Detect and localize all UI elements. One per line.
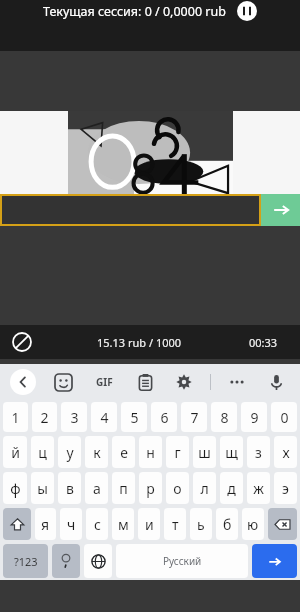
- staticText: р: [146, 479, 155, 498]
- staticText: е: [120, 443, 128, 462]
- button[interactable]: [0, 194, 261, 226]
- staticText: а: [93, 479, 101, 498]
- staticText: у: [66, 443, 74, 462]
- button[interactable]: Submit captcha: [261, 194, 300, 226]
- button[interactable]: т: [164, 508, 186, 540]
- staticText: ?123: [14, 554, 38, 569]
- staticText: 9: [250, 408, 259, 427]
- staticText: б: [223, 515, 232, 534]
- button[interactable]: е: [112, 436, 135, 468]
- button[interactable]: з: [247, 436, 270, 468]
- staticText: ж: [253, 479, 264, 498]
- button[interactable]: Voice input: [265, 371, 287, 393]
- staticText: 0: [280, 408, 289, 427]
- button[interactable]: 7: [181, 402, 207, 432]
- button[interactable]: к: [85, 436, 108, 468]
- button[interactable]: Shift: [3, 508, 31, 540]
- button[interactable]: щ: [220, 436, 243, 468]
- button[interactable]: р: [139, 472, 162, 504]
- staticText: Текущая сессия: 0 / 0,0000 rub: [43, 3, 226, 20]
- button[interactable]: Change language: [84, 544, 112, 578]
- button[interactable]: д: [220, 472, 243, 504]
- button[interactable]: Stop: [11, 331, 33, 353]
- button[interactable]: ?123: [3, 544, 48, 578]
- button[interactable]: Clipboard: [134, 371, 156, 393]
- button[interactable]: м: [112, 508, 134, 540]
- staticText: г: [174, 443, 181, 462]
- button[interactable]: Pause session: [236, 0, 258, 22]
- button[interactable]: Settings: [173, 371, 195, 393]
- staticText: Русский: [163, 554, 202, 568]
- button[interactable]: о: [166, 472, 189, 504]
- button[interactable]: 0: [271, 402, 297, 432]
- staticText: ц: [38, 443, 47, 462]
- button[interactable]: ю: [242, 508, 264, 540]
- button[interactable]: й: [3, 436, 27, 468]
- staticText: п: [119, 479, 128, 498]
- button[interactable]: 5: [121, 402, 147, 432]
- button[interactable]: ч: [60, 508, 82, 540]
- button[interactable]: 2: [32, 402, 57, 432]
- button[interactable]: п: [112, 472, 135, 504]
- staticText: л: [200, 479, 209, 498]
- staticText: х: [282, 443, 290, 462]
- staticText: о: [173, 479, 182, 498]
- button[interactable]: с: [86, 508, 108, 540]
- button[interactable]: б: [216, 508, 238, 540]
- button[interactable]: 3: [61, 402, 87, 432]
- button[interactable]: ф: [3, 472, 27, 504]
- staticText: 8: [220, 408, 229, 427]
- button[interactable]: GIF: [91, 369, 117, 395]
- button[interactable]: в: [58, 472, 81, 504]
- button[interactable]: ж: [247, 472, 270, 504]
- staticText: 4: [100, 408, 109, 427]
- button[interactable]: у: [58, 436, 81, 468]
- button[interactable]: э: [274, 472, 297, 504]
- button[interactable]: ц: [31, 436, 54, 468]
- button[interactable]: ы: [31, 472, 54, 504]
- staticText: к: [93, 443, 101, 462]
- button[interactable]: Captcha image: [68, 111, 233, 194]
- button[interactable]: 9: [241, 402, 267, 432]
- staticText: 15.13 rub / 1000: [97, 335, 182, 350]
- staticText: э: [282, 479, 289, 498]
- staticText: 7: [190, 408, 199, 427]
- button[interactable]: 1: [3, 402, 28, 432]
- staticText: з: [255, 443, 262, 462]
- staticText: ь: [197, 515, 205, 534]
- staticText: ч: [67, 515, 76, 534]
- button[interactable]: More options: [226, 371, 248, 393]
- button[interactable]: Back: [10, 369, 36, 395]
- button[interactable]: 6: [151, 402, 177, 432]
- button[interactable]: л: [193, 472, 216, 504]
- button[interactable]: Stickers: [52, 371, 74, 393]
- button[interactable]: Emoji and comma: [52, 544, 80, 578]
- staticText: я: [41, 515, 50, 534]
- button[interactable]: х: [274, 436, 297, 468]
- button[interactable]: н: [139, 436, 162, 468]
- button[interactable]: Русский: [116, 544, 248, 578]
- button[interactable]: 8: [211, 402, 237, 432]
- staticText: ы: [37, 479, 48, 498]
- button[interactable]: а: [85, 472, 108, 504]
- button[interactable]: ь: [190, 508, 212, 540]
- staticText: м: [118, 515, 129, 534]
- button[interactable]: г: [166, 436, 189, 468]
- button[interactable]: Enter: [252, 544, 297, 578]
- staticText: н: [146, 443, 155, 462]
- staticText: ш: [198, 443, 211, 462]
- staticText: GIF: [96, 375, 113, 389]
- staticText: щ: [225, 443, 238, 462]
- staticText: ф: [10, 479, 21, 498]
- staticText: в: [66, 479, 74, 498]
- button[interactable]: ш: [193, 436, 216, 468]
- staticText: й: [11, 443, 20, 462]
- button[interactable]: 4: [91, 402, 117, 432]
- staticText: 6: [160, 408, 169, 427]
- button[interactable]: и: [138, 508, 160, 540]
- staticText: 5: [130, 408, 139, 427]
- staticText: и: [145, 515, 154, 534]
- button[interactable]: Backspace: [268, 508, 297, 540]
- staticText: 00:33: [249, 335, 278, 350]
- button[interactable]: я: [35, 508, 56, 540]
